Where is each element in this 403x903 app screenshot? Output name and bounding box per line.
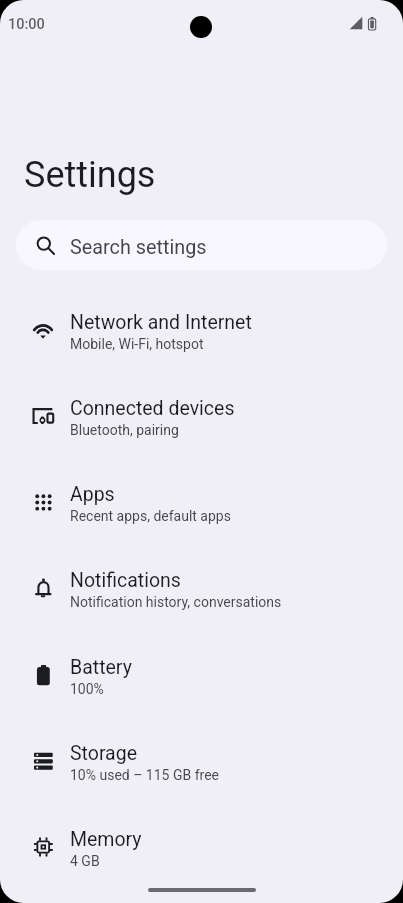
staticText: Notifications [70,569,181,592]
staticText: Network and Internet [70,311,252,334]
staticText: 10% used – 115 GB free [70,767,219,783]
button[interactable]: Connected devices [0,374,403,460]
button[interactable]: Storage [0,719,403,805]
staticText: Settings [24,154,156,196]
staticText: Mobile, Wi-Fi, hotspot [70,336,204,352]
staticText: Search settings [70,236,207,259]
staticText: 4 GB [70,853,100,869]
staticText: Connected devices [70,397,235,420]
button[interactable]: Search settings [16,220,387,270]
staticText: Battery [70,656,132,679]
button[interactable]: Network and Internet [0,288,403,374]
staticText: Storage [70,742,138,765]
staticText: 100% [70,681,104,697]
staticText: Memory [70,828,142,851]
staticText: Recent apps, default apps [70,508,231,524]
staticText: 10:00 [8,16,45,33]
button[interactable]: Apps [0,460,403,546]
button[interactable]: Memory [0,805,403,891]
staticText: Notification history, conversations [70,594,282,610]
button[interactable]: Notifications [0,546,403,632]
staticText: Apps [70,483,115,506]
button[interactable]: Battery [0,633,403,719]
staticText: Bluetooth, pairing [70,422,179,438]
